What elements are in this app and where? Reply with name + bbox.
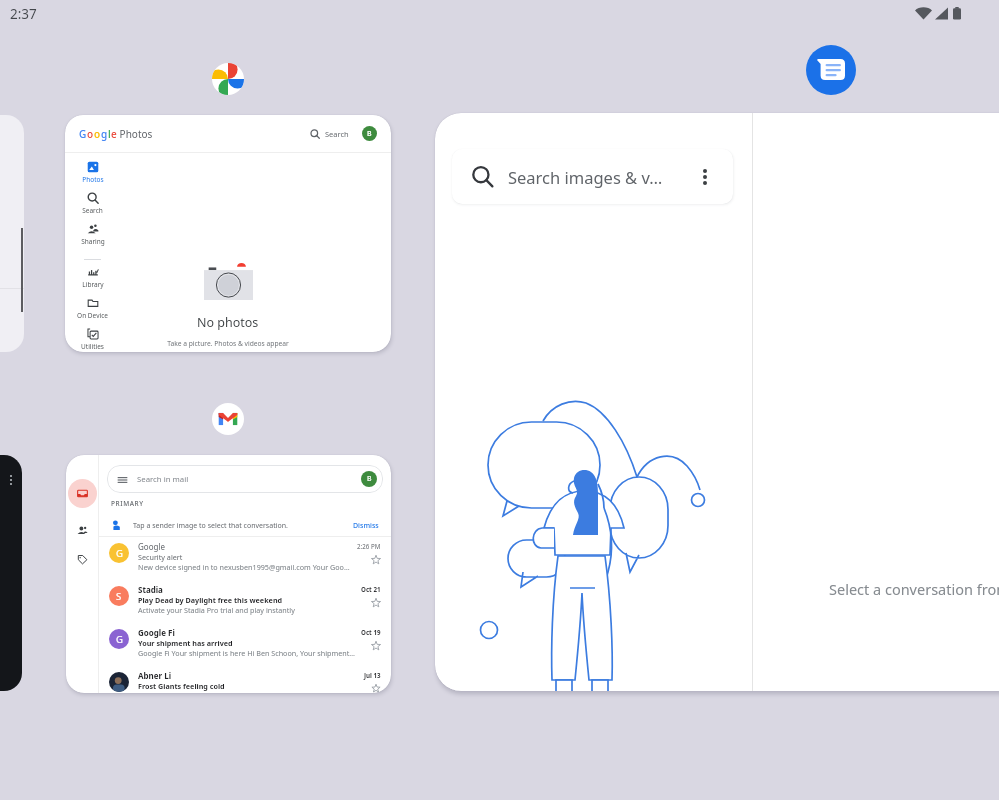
staticText: o <box>94 127 101 141</box>
staticText: e <box>111 127 117 141</box>
staticText: Frost Giants feeling cold <box>138 681 225 691</box>
staticText: Activate your Stadia Pro trial and play … <box>138 605 295 615</box>
staticText: Oct 19 <box>361 628 381 636</box>
staticText: 2:37 <box>10 5 37 23</box>
staticText: o <box>87 127 94 141</box>
staticText: g <box>101 127 108 141</box>
staticText: Search <box>82 206 103 215</box>
button[interactable]: G <box>109 623 381 666</box>
staticText: On Device <box>77 311 108 320</box>
staticText: Play Dead by Daylight free this weekend <box>138 595 283 605</box>
button[interactable]: Utilities <box>65 328 120 352</box>
button[interactable]: Social <box>69 517 95 543</box>
staticText: Search in mail <box>137 474 189 485</box>
staticText: Tap a sender image to select that conver… <box>133 521 288 531</box>
staticText: S <box>116 590 122 603</box>
button[interactable]: Gmail <box>212 403 244 435</box>
staticText: Google <box>138 541 165 552</box>
button[interactable]: Library <box>65 266 120 297</box>
staticText: Jul 13 <box>364 671 381 679</box>
staticText: Library <box>82 280 104 289</box>
staticText: Search <box>325 129 349 139</box>
staticText: Google Fi <box>138 627 175 638</box>
staticText: 2:26 PM <box>357 542 381 550</box>
staticText: l <box>108 127 111 141</box>
staticText: G <box>116 547 123 560</box>
staticText: Stadia <box>138 584 163 595</box>
staticText: G <box>116 633 123 646</box>
button[interactable]: G <box>65 115 391 352</box>
staticText: Your shipment has arrived <box>138 638 233 648</box>
staticText: Select a conversation from the list <box>829 579 999 599</box>
button[interactable]: S <box>109 580 381 623</box>
button[interactable]: Primary inbox <box>66 455 391 693</box>
button[interactable]: Sharing <box>65 223 120 254</box>
staticText: New device signed in to nexusben1995@gma… <box>138 562 352 572</box>
button[interactable]: Previous app <box>0 115 24 352</box>
button[interactable]: Abner Li <box>109 666 381 693</box>
staticText: Photos <box>117 127 153 141</box>
staticText: B <box>367 129 372 139</box>
staticText: Security alert <box>138 552 183 562</box>
button[interactable]: Google Photos <box>212 63 244 95</box>
staticText: Photos <box>82 175 104 184</box>
staticText: Google Fi Your shipment is here Hi Ben S… <box>138 648 356 658</box>
staticText: G <box>79 127 87 141</box>
staticText: B <box>367 474 372 484</box>
button[interactable]: Tap a sender image to select that conver… <box>111 515 379 536</box>
button[interactable]: Previous app <box>0 455 22 691</box>
button[interactable]: Search <box>310 129 349 139</box>
staticText: Utilities <box>81 342 104 351</box>
button[interactable]: Account <box>362 126 377 141</box>
button[interactable]: Photos <box>65 161 120 192</box>
button[interactable]: More options <box>695 167 715 187</box>
button[interactable]: Search images & v… <box>452 149 733 204</box>
button[interactable]: Promotions <box>69 546 95 572</box>
staticText: No photos <box>197 314 259 331</box>
staticText: Oct 21 <box>361 585 381 593</box>
button[interactable]: Search in mail <box>107 465 383 493</box>
button[interactable]: Dismiss <box>353 521 379 531</box>
button[interactable]: Primary inbox <box>68 479 97 508</box>
staticText: PRIMARY <box>111 499 144 508</box>
button[interactable]: Search <box>65 192 120 223</box>
button[interactable]: Search images & v… <box>435 113 999 691</box>
button[interactable]: On Device <box>65 297 120 328</box>
button[interactable]: G <box>109 537 381 580</box>
staticText: Take a picture. Photos & videos appear <box>167 339 289 348</box>
staticText: Search images & v… <box>508 166 663 188</box>
staticText: Abner Li <box>138 670 172 681</box>
staticText: Sharing <box>81 237 105 246</box>
button[interactable]: Messages <box>806 45 856 95</box>
